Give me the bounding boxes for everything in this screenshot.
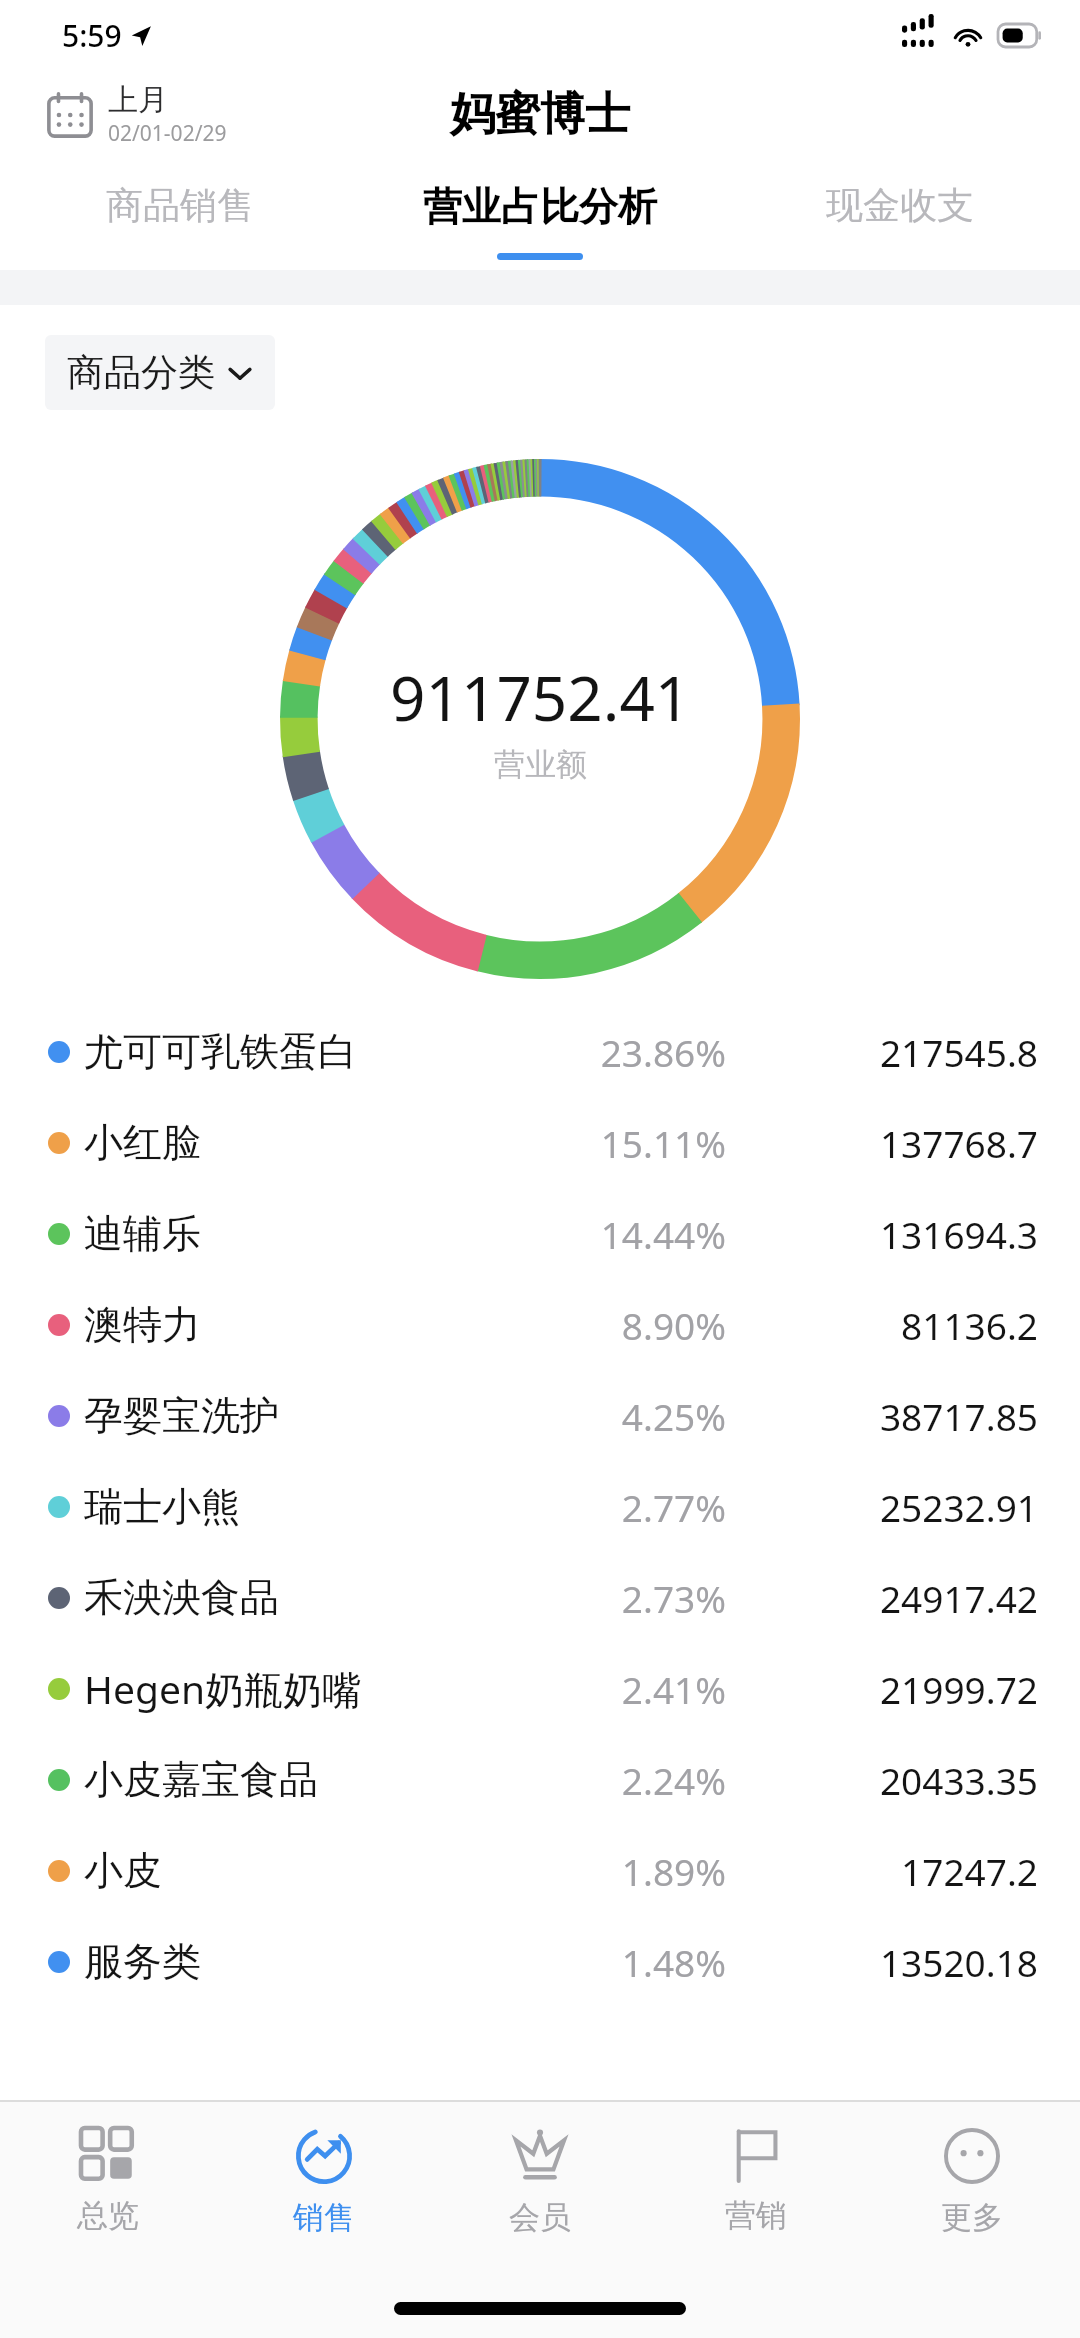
button[interactable]: 孕婴宝洗护 <box>0 1370 1080 1461</box>
staticText: 营业额 <box>494 745 587 784</box>
staticText: 20433.35 <box>726 1755 1038 1805</box>
staticText: 澳特力 <box>84 1300 201 1349</box>
staticText: 商品分类 <box>67 349 215 396</box>
other: 销售 <box>296 2128 352 2184</box>
button[interactable]: 商品分类 <box>45 335 275 410</box>
staticText: 4.25% <box>426 1391 726 1441</box>
button[interactable]: 尤可可乳铁蛋白 <box>0 1006 1080 1097</box>
staticText: 迪辅乐 <box>84 1209 201 1258</box>
button[interactable]: 总览 <box>0 2102 216 2278</box>
button[interactable]: 现金收支 <box>720 158 1080 270</box>
button[interactable]: Date range <box>42 77 231 152</box>
staticText: 营业占比分析 <box>423 182 657 231</box>
staticText: 02/01-02/29 <box>108 119 227 148</box>
staticText: 禾泱泱食品 <box>84 1573 279 1622</box>
button[interactable]: 商品销售 <box>0 158 360 270</box>
staticText: 妈蜜博士 <box>450 86 630 143</box>
staticText: 2.41% <box>426 1664 726 1714</box>
button[interactable]: 会员 <box>432 2102 648 2278</box>
staticText: 23.86% <box>426 1027 726 1077</box>
other: 总览 <box>81 2128 135 2182</box>
staticText: 小皮嘉宝食品 <box>84 1755 318 1804</box>
staticText: 24917.42 <box>726 1573 1038 1623</box>
button[interactable]: 营业占比分析 <box>360 158 720 270</box>
staticText: 会员 <box>509 2198 571 2237</box>
button[interactable]: Hegen奶瓶奶嘴 <box>0 1643 1080 1734</box>
staticText: 上月 <box>108 81 168 119</box>
staticText: 21999.72 <box>726 1664 1038 1714</box>
staticText: 2.77% <box>426 1482 726 1532</box>
button[interactable]: 迪辅乐 <box>0 1188 1080 1279</box>
button[interactable]: 小红脸 <box>0 1097 1080 1188</box>
staticText: 1.48% <box>426 1937 726 1987</box>
staticText: 911752.41 <box>390 655 691 739</box>
staticText: 25232.91 <box>726 1482 1038 1532</box>
staticText: 服务类 <box>84 1937 201 1986</box>
button[interactable]: 禾泱泱食品 <box>0 1552 1080 1643</box>
staticText: 销售 <box>293 2198 355 2237</box>
staticText: 尤可可乳铁蛋白 <box>84 1027 357 1076</box>
button[interactable]: 更多 <box>864 2102 1080 2278</box>
staticText: Hegen奶瓶奶嘴 <box>84 1662 361 1715</box>
staticText: 8.90% <box>426 1300 726 1350</box>
button[interactable]: 销售 <box>216 2102 432 2278</box>
other: 会员 <box>512 2128 568 2184</box>
other: 更多 <box>944 2128 1000 2184</box>
staticText: 5:59 <box>62 15 122 56</box>
staticText: 17247.2 <box>726 1846 1038 1896</box>
staticText: 137768.7 <box>726 1118 1038 1168</box>
button[interactable]: 澳特力 <box>0 1279 1080 1370</box>
staticText: 现金收支 <box>826 182 974 229</box>
other: Date range <box>46 91 94 139</box>
button[interactable]: 小皮嘉宝食品 <box>0 1734 1080 1825</box>
button[interactable]: 瑞士小熊 <box>0 1461 1080 1552</box>
staticText: 14.44% <box>426 1209 726 1259</box>
staticText: 孕婴宝洗护 <box>84 1391 279 1440</box>
staticText: 131694.3 <box>726 1209 1038 1259</box>
button[interactable]: 服务类 <box>0 1916 1080 2007</box>
button[interactable]: 营销 <box>648 2102 864 2278</box>
staticText: 81136.2 <box>726 1300 1038 1350</box>
staticText: 商品销售 <box>106 182 254 229</box>
staticText: 13520.18 <box>726 1937 1038 1987</box>
staticText: 更多 <box>941 2198 1003 2237</box>
staticText: 2.24% <box>426 1755 726 1805</box>
staticText: 总览 <box>77 2196 139 2235</box>
staticText: 2.73% <box>426 1573 726 1623</box>
staticText: 1.89% <box>426 1846 726 1896</box>
staticText: 38717.85 <box>726 1391 1038 1441</box>
other: 营销 <box>729 2128 783 2182</box>
staticText: 营销 <box>725 2196 787 2235</box>
staticText: 15.11% <box>426 1118 726 1168</box>
staticText: 小红脸 <box>84 1118 201 1167</box>
staticText: 小皮 <box>84 1846 162 1895</box>
staticText: 瑞士小熊 <box>84 1482 240 1531</box>
staticText: 217545.8 <box>726 1027 1038 1077</box>
button[interactable]: 小皮 <box>0 1825 1080 1916</box>
